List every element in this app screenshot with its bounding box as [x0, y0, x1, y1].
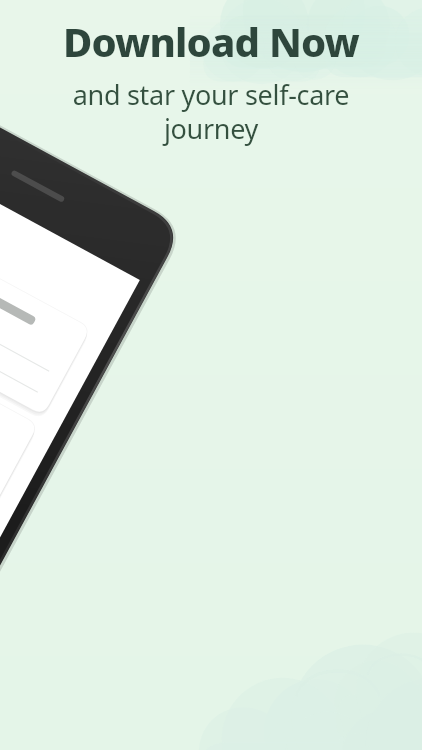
staticText: and star your self-care journey — [8, 76, 414, 147]
staticText: Download Now — [8, 14, 414, 68]
button[interactable]: Add new journal entry — [0, 0, 422, 750]
